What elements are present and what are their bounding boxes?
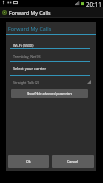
staticText: Straight Talk (2) xyxy=(13,80,40,85)
staticText: Forward My Calls xyxy=(8,25,52,32)
other: Open carrier list xyxy=(87,80,91,84)
staticText: Cancel xyxy=(67,159,79,164)
staticText: Select your carrier xyxy=(13,66,47,71)
staticText: Tremblay, Net93 xyxy=(13,54,41,59)
staticText: Wi-Fi (SSID) xyxy=(13,43,34,48)
staticText: Forward My Calls xyxy=(9,9,51,16)
button[interactable]: Ok xyxy=(8,155,49,168)
button[interactable]: Show/Hide advanced parameters xyxy=(11,89,88,98)
button[interactable]: Cancel xyxy=(52,155,94,168)
staticText: Ok xyxy=(26,159,31,164)
staticText: Show/Hide advanced parameters xyxy=(27,92,73,96)
staticText: 20:11 xyxy=(86,0,102,7)
